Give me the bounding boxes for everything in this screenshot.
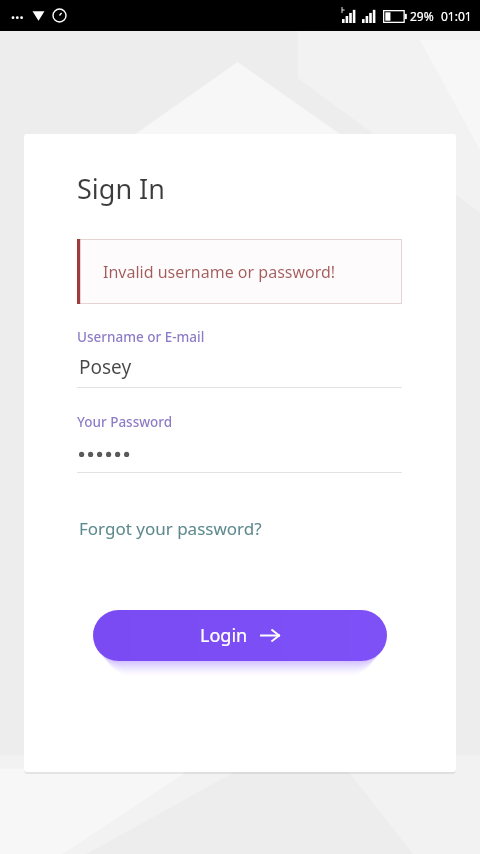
staticText: Sign In — [77, 170, 165, 207]
button[interactable]: Your Password — [77, 413, 402, 473]
staticText: 01:01 — [441, 8, 472, 24]
staticText: Posey — [79, 354, 132, 380]
button[interactable]: Forgot your password? — [77, 513, 264, 544]
staticText: Username or E-mail — [77, 328, 205, 346]
staticText: Login — [200, 623, 248, 648]
staticText: Invalid username or password! — [103, 261, 336, 283]
staticText: 29% — [410, 8, 434, 24]
staticText: Your Password — [77, 413, 173, 431]
button[interactable]: Login — [93, 610, 387, 661]
staticText: Forgot your password? — [79, 517, 262, 540]
button[interactable]: Username or E-mail — [77, 328, 402, 388]
